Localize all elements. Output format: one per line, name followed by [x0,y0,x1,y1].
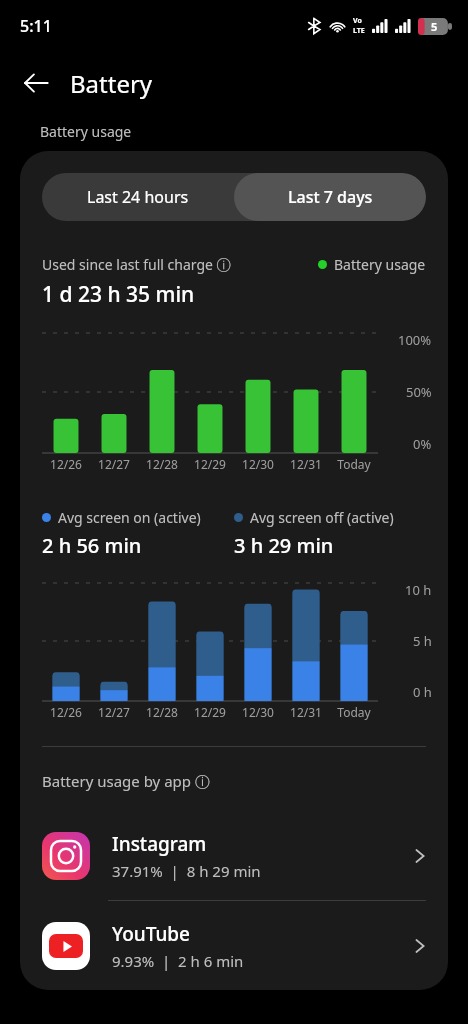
staticText: 12/27 [90,456,138,472]
staticText: 37.91% | 8 h 29 min [112,861,261,881]
staticText: 12/27 [90,704,138,720]
staticText: 12/26 [42,704,90,720]
staticText: Today [330,456,378,472]
staticText: 12/29 [186,456,234,472]
staticText: Battery usage [334,255,426,274]
staticText: LTE [353,26,365,36]
staticText: 9.93% | 2 h 6 min [112,951,244,971]
staticText: Last 24 hours [87,186,189,208]
staticText: YouTube [112,921,190,947]
staticText: 12/30 [234,704,282,720]
button[interactable]: Last 24 hours [42,173,234,221]
staticText: 12/26 [42,456,90,472]
staticText: Battery usage by app ⓘ [42,771,210,791]
staticText: Last 7 days [288,186,373,208]
staticText: 1 d 23 h 35 min [42,280,195,309]
staticText: 5 h [413,632,432,650]
staticText: Battery [70,67,153,100]
staticText: 12/29 [186,704,234,720]
staticText: 3 h 29 min [234,532,334,559]
staticText: 12/28 [138,456,186,472]
staticText: Today [330,704,378,720]
staticText: 12/28 [138,704,186,720]
staticText: 12/31 [282,456,330,472]
staticText: 12/30 [234,456,282,472]
staticText: Battery usage [40,122,132,141]
staticText: 5:11 [20,15,52,37]
staticText: 0 h [413,683,432,701]
staticText: 50% [406,383,432,401]
staticText: Used since last full charge ⓘ [42,255,231,274]
button[interactable]: YouTube [20,901,448,990]
button[interactable]: Last 7 days [234,173,426,221]
staticText: 100% [398,331,432,349]
staticText: 5 [431,19,438,34]
staticText: Vo [353,16,362,26]
staticText: 10 h [405,581,432,599]
staticText: Avg screen off (active) [250,508,394,527]
button[interactable]: Back [10,57,62,109]
staticText: 12/31 [282,704,330,720]
staticText: Instagram [112,831,207,857]
staticText: 2 h 56 min [42,532,142,559]
staticText: Avg screen on (active) [58,508,201,527]
button[interactable]: Instagram [20,811,448,900]
staticText: 0% [413,435,432,453]
